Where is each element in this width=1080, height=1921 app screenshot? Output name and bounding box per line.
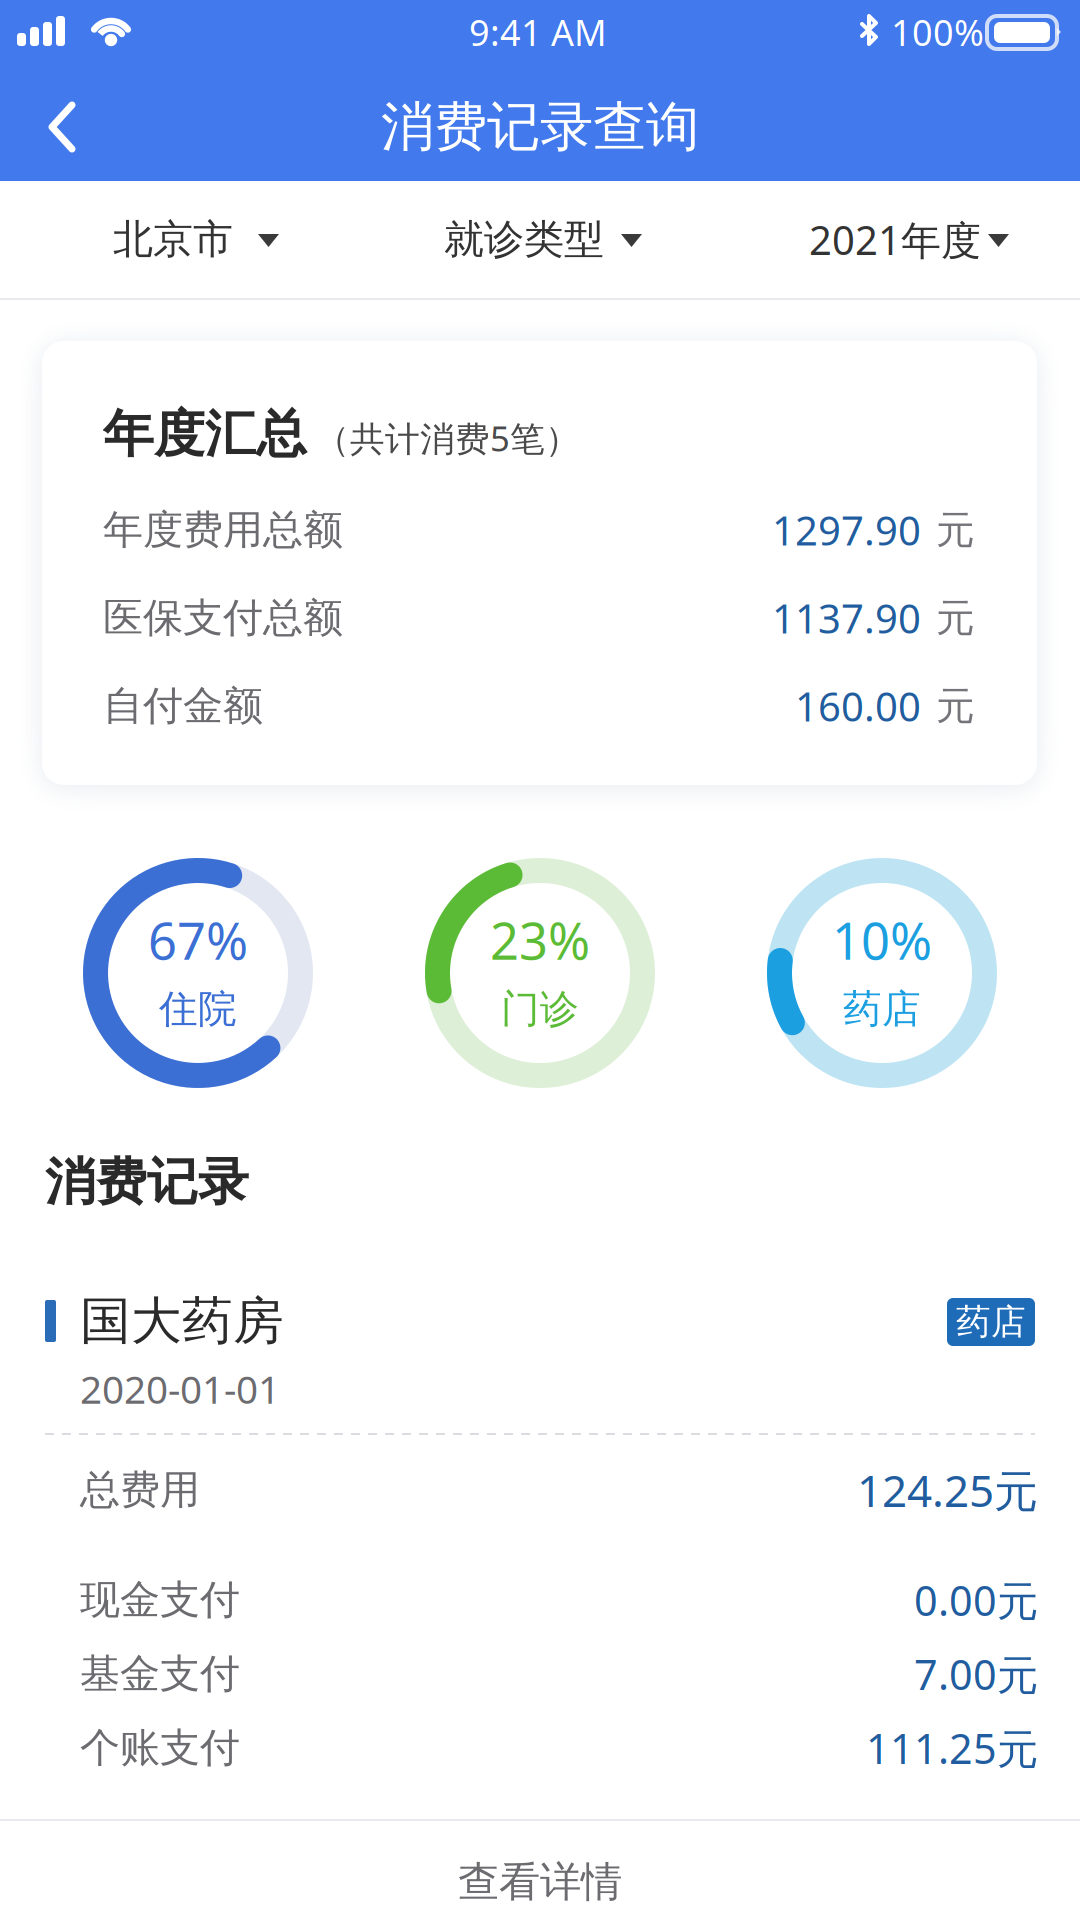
staticText: 2020-01-01 bbox=[80, 1363, 280, 1414]
staticText: 消费记录 bbox=[45, 1151, 249, 1213]
staticText: 124.25元 bbox=[857, 1461, 1038, 1519]
staticText: 北京市 bbox=[113, 215, 233, 264]
staticText: 自付金额 bbox=[103, 681, 263, 730]
staticText: 住院 bbox=[159, 985, 237, 1033]
staticText: 就诊类型 bbox=[444, 215, 604, 264]
staticText: 1297.90 bbox=[772, 503, 921, 556]
staticText: 7.00元 bbox=[914, 1647, 1038, 1701]
staticText: 67% bbox=[148, 906, 248, 974]
staticText: 160.00 bbox=[795, 679, 921, 732]
staticText: 1137.90 bbox=[772, 591, 921, 644]
staticText: 总费用 bbox=[80, 1465, 200, 1514]
staticText: 国大药房 bbox=[80, 1290, 284, 1352]
staticText: 元 bbox=[936, 682, 975, 730]
staticText: 0.00元 bbox=[914, 1573, 1038, 1627]
button[interactable]: Back bbox=[0, 75, 124, 179]
staticText: 年度费用总额 bbox=[103, 505, 343, 554]
staticText: 药店 bbox=[843, 985, 921, 1033]
staticText: 9:41 AM bbox=[469, 8, 607, 56]
button[interactable]: 就诊类型 bbox=[444, 181, 640, 298]
staticText: 药店 bbox=[956, 1301, 1026, 1343]
staticText: 医保支付总额 bbox=[103, 593, 343, 642]
staticText: 基金支付 bbox=[80, 1649, 240, 1698]
staticText: 门诊 bbox=[501, 985, 579, 1033]
button[interactable]: 北京市 bbox=[113, 181, 281, 298]
staticText: 10% bbox=[832, 906, 932, 974]
staticText: （共计消费5笔） bbox=[315, 415, 580, 461]
staticText: 23% bbox=[490, 906, 590, 974]
staticText: 消费记录查询 bbox=[381, 94, 699, 160]
staticText: 年度汇总 bbox=[103, 403, 307, 465]
staticText: 元 bbox=[936, 594, 975, 642]
staticText: 元 bbox=[936, 506, 975, 554]
staticText: 100% bbox=[891, 8, 984, 56]
button[interactable]: 查看详情 bbox=[0, 1821, 1080, 1921]
staticText: 111.25元 bbox=[866, 1721, 1038, 1775]
staticText: 个账支付 bbox=[80, 1723, 240, 1772]
staticText: 现金支付 bbox=[80, 1575, 240, 1624]
button[interactable]: 2021年度 bbox=[809, 181, 1005, 298]
staticText: 查看详情 bbox=[458, 1857, 622, 1907]
button[interactable]: 药店 bbox=[947, 1298, 1035, 1346]
staticText: 2021年度 bbox=[809, 213, 981, 266]
